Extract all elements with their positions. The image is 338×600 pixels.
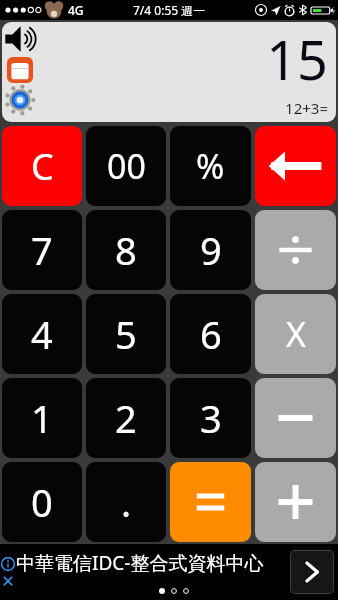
staticText: . xyxy=(121,476,132,528)
staticText: 6 xyxy=(200,308,222,360)
staticText: 7 xyxy=(31,224,53,276)
button[interactable]: Multiply xyxy=(255,294,336,374)
staticText: 12+3= xyxy=(285,98,328,118)
staticText: 00 xyxy=(107,143,146,189)
button[interactable]: 7 xyxy=(2,210,82,290)
staticText: 0 xyxy=(31,476,53,528)
button[interactable]: Divide xyxy=(255,210,336,290)
button[interactable]: 0 xyxy=(2,462,82,542)
button[interactable]: Backspace xyxy=(255,126,336,206)
button[interactable]: 2 xyxy=(86,378,166,458)
staticText: 9 xyxy=(200,224,222,276)
staticText: 7/4 0:55 週一 xyxy=(133,2,206,18)
staticText: 4G xyxy=(68,2,84,18)
button[interactable]: Sound xyxy=(4,23,36,55)
staticText: 15 xyxy=(266,22,328,96)
staticText: 4 xyxy=(31,308,53,360)
staticText: % xyxy=(196,143,225,189)
button[interactable]: 3 xyxy=(170,378,251,458)
button[interactable]: Next ad xyxy=(290,550,334,594)
button[interactable]: 6 xyxy=(170,294,251,374)
button[interactable]: Equals xyxy=(170,462,251,542)
button[interactable]: 1 xyxy=(2,378,82,458)
button[interactable]: Memo xyxy=(7,57,33,83)
staticText: 5 xyxy=(115,308,137,360)
staticText: 中華電信IDC-整合式資料中心 xyxy=(16,550,264,576)
staticText: 2 xyxy=(115,392,137,444)
button[interactable]: 4 xyxy=(2,294,82,374)
button[interactable]: Settings xyxy=(6,86,34,114)
staticText: X xyxy=(286,311,306,357)
button[interactable]: 5 xyxy=(86,294,166,374)
staticText: 3 xyxy=(200,392,222,444)
button[interactable]: % xyxy=(170,126,251,206)
button[interactable]: 8 xyxy=(86,210,166,290)
button[interactable]: C xyxy=(2,126,82,206)
button[interactable]: 中華電信IDC-整合式資料中心 xyxy=(0,544,338,600)
button[interactable]: Plus xyxy=(255,462,336,542)
staticText: C xyxy=(31,142,54,191)
button[interactable]: 9 xyxy=(170,210,251,290)
button[interactable]: . xyxy=(86,462,166,542)
button[interactable]: 00 xyxy=(86,126,166,206)
button[interactable]: Minus xyxy=(255,378,336,458)
staticText: 1 xyxy=(31,392,53,444)
staticText: 8 xyxy=(115,224,137,276)
